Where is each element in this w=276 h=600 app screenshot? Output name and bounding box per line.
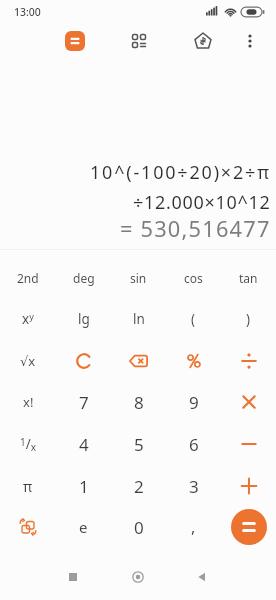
button[interactable] — [56, 340, 111, 382]
staticText: e — [79, 517, 88, 537]
button[interactable] — [241, 32, 259, 50]
button[interactable]: 6 — [166, 423, 221, 465]
button[interactable] — [221, 340, 276, 382]
staticText: 8 — [134, 391, 144, 414]
button[interactable]: deg — [56, 257, 111, 299]
staticText: ) — [246, 310, 251, 328]
button[interactable]: ln — [111, 298, 166, 340]
staticText: 4 — [79, 433, 89, 456]
button[interactable]: ) — [221, 298, 276, 340]
staticText: = 530,516477 — [120, 214, 271, 244]
staticText: xy — [22, 310, 34, 328]
button[interactable]: , — [166, 506, 221, 548]
staticText: 2 — [134, 475, 144, 498]
button[interactable]: 5 — [111, 423, 166, 465]
button[interactable] — [221, 423, 276, 465]
staticText: lg — [78, 310, 90, 328]
button[interactable]: 1 — [56, 465, 111, 507]
button[interactable]: e — [56, 506, 111, 548]
staticText: tan — [239, 270, 258, 286]
staticText: 0 — [134, 516, 144, 539]
staticText: sin — [130, 270, 147, 286]
staticText: 7 — [79, 391, 89, 414]
button[interactable] — [0, 506, 56, 548]
button[interactable] — [129, 31, 149, 51]
staticText: 1/x — [20, 435, 37, 453]
button[interactable] — [195, 570, 209, 584]
staticText: , — [191, 516, 196, 538]
staticText: √x — [20, 352, 36, 370]
button[interactable] — [66, 570, 80, 584]
button[interactable]: π — [0, 465, 56, 507]
button[interactable]: 1/x — [0, 423, 56, 465]
button[interactable]: 9 — [166, 381, 221, 423]
button[interactable]: sin — [111, 257, 166, 299]
staticText: 1 — [79, 475, 89, 498]
button[interactable]: 2nd — [0, 257, 56, 299]
button[interactable] — [111, 340, 166, 382]
staticText: π — [23, 477, 33, 496]
staticText: 6 — [189, 433, 199, 456]
button[interactable] — [221, 506, 276, 548]
button[interactable] — [221, 381, 276, 423]
button[interactable]: 3 — [166, 465, 221, 507]
staticText: ln — [133, 310, 145, 328]
button[interactable] — [193, 31, 213, 51]
button[interactable]: xy — [0, 298, 56, 340]
button[interactable]: x! — [0, 381, 56, 423]
button[interactable] — [65, 31, 85, 51]
staticText: x! — [23, 393, 34, 411]
button[interactable]: 0 — [111, 506, 166, 548]
staticText: 3 — [189, 475, 199, 498]
staticText: deg — [73, 270, 95, 286]
staticText: cos — [184, 270, 203, 286]
button[interactable]: 4 — [56, 423, 111, 465]
staticText: ÷12.000×10^12 — [133, 190, 271, 215]
button[interactable] — [166, 340, 221, 382]
staticText: 2nd — [17, 270, 39, 286]
button[interactable]: ( — [166, 298, 221, 340]
button[interactable]: 7 — [56, 381, 111, 423]
staticText: ( — [191, 310, 196, 328]
button[interactable] — [221, 465, 276, 507]
button[interactable] — [131, 570, 145, 584]
button[interactable]: √x — [0, 340, 56, 382]
button[interactable]: 8 — [111, 381, 166, 423]
button[interactable]: cos — [166, 257, 221, 299]
staticText: 9 — [189, 391, 199, 414]
button[interactable]: lg — [56, 298, 111, 340]
button[interactable]: 2 — [111, 465, 166, 507]
staticText: 5 — [134, 433, 144, 456]
staticText: 13:00 — [14, 5, 41, 19]
button[interactable]: tan — [221, 257, 276, 299]
staticText: 10^(-100÷20)×2÷π — [90, 160, 271, 185]
